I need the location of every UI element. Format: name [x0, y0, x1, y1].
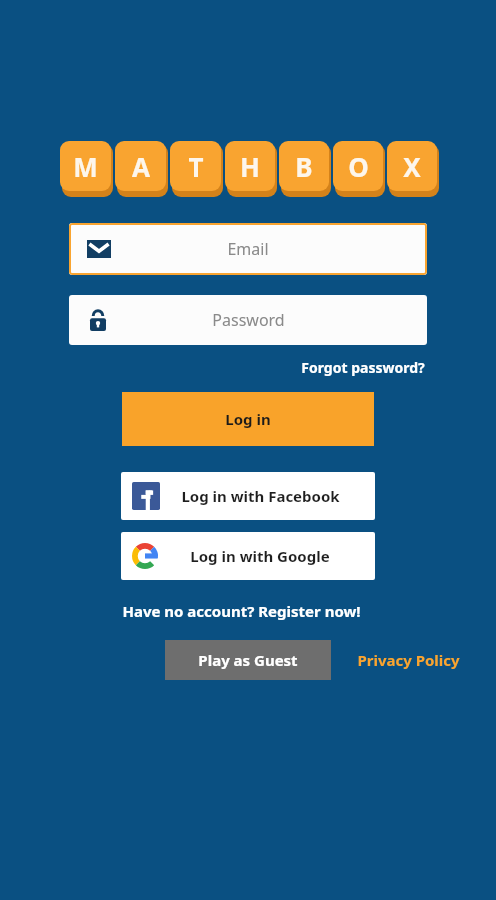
staticText: O: [348, 149, 369, 184]
button[interactable]: Password: [69, 295, 427, 345]
button[interactable]: Play as Guest: [165, 640, 331, 680]
staticText: B: [295, 149, 313, 184]
staticText: Log in: [225, 409, 271, 429]
staticText: Email: [227, 238, 269, 260]
staticText: Privacy Policy: [357, 650, 460, 670]
button[interactable]: Log in: [122, 392, 374, 446]
staticText: Have no account? Register now!: [122, 601, 361, 621]
button[interactable]: Privacy Policy: [355, 648, 462, 672]
button[interactable]: Log in with Google: [121, 532, 375, 580]
staticText: A: [132, 149, 150, 184]
button[interactable]: Have no account? Register now!: [120, 599, 363, 623]
button[interactable]: Email: [69, 223, 427, 275]
staticText: T: [188, 149, 204, 184]
other: Log in with Facebook: [132, 482, 160, 510]
other: Log in with Google: [132, 543, 158, 569]
other: Password: [88, 309, 108, 331]
staticText: Password: [212, 309, 285, 331]
button[interactable]: Forgot password?: [299, 356, 427, 379]
staticText: X: [403, 149, 421, 184]
other: Email: [87, 240, 111, 258]
button[interactable]: Log in with Facebook: [121, 472, 375, 520]
staticText: M: [73, 149, 98, 184]
staticText: H: [240, 149, 260, 184]
staticText: Forgot password?: [301, 358, 425, 377]
staticText: Log in with Google: [190, 546, 330, 566]
staticText: Log in with Facebook: [181, 486, 340, 506]
staticText: Play as Guest: [198, 650, 298, 670]
